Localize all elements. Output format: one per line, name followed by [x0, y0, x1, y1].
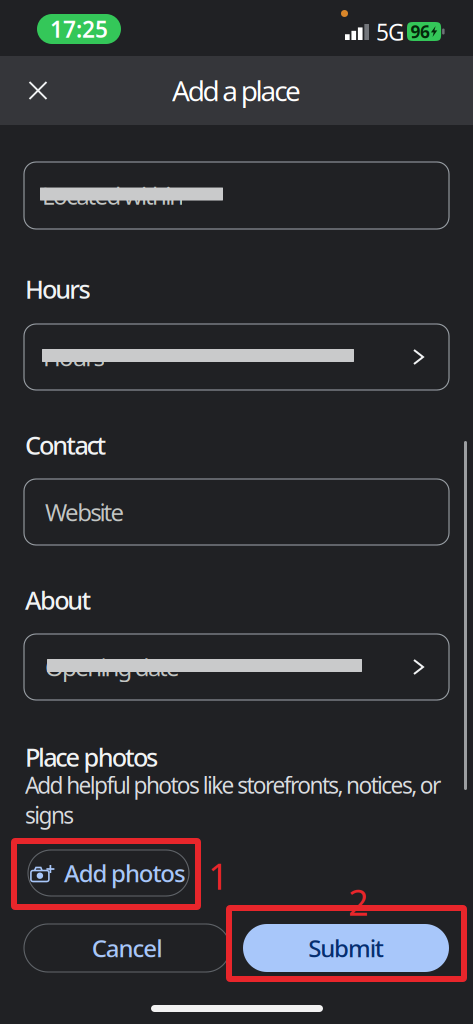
staticText: Place photos: [25, 740, 158, 774]
staticText: Opening date: [45, 651, 180, 683]
staticText: Cancel: [92, 932, 162, 964]
button[interactable]: Add photos: [28, 850, 189, 896]
staticText: Add photos: [64, 857, 186, 889]
staticText: About: [25, 583, 91, 617]
staticText: 5G: [376, 17, 405, 47]
staticText: Hours: [43, 341, 104, 373]
button[interactable]: Submit: [243, 924, 449, 972]
staticText: Contact: [25, 428, 107, 462]
staticText: Hours: [25, 272, 90, 306]
staticText: 1: [208, 852, 229, 900]
staticText: signs: [25, 800, 74, 830]
staticText: 2: [348, 878, 369, 926]
staticText: 17:25: [50, 14, 108, 44]
staticText: Add helpful photos like storefronts, not…: [25, 770, 441, 800]
button[interactable]: Close: [0, 56, 76, 125]
staticText: 96: [410, 20, 430, 43]
staticText: Add a place: [172, 72, 301, 109]
button[interactable]: Cancel: [24, 924, 230, 972]
staticText: Website: [45, 496, 125, 528]
staticText: Submit: [308, 932, 384, 964]
staticText: Located within: [42, 180, 184, 211]
